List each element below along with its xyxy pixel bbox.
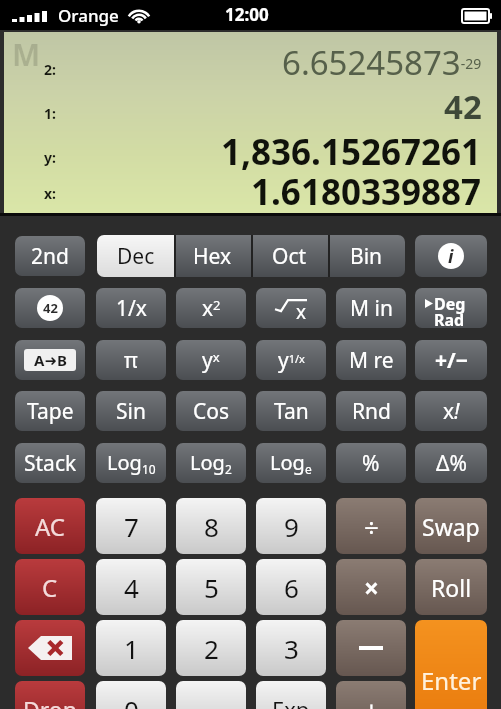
button[interactable]: Bin [328,235,405,277]
button[interactable]: Tape [15,391,85,431]
button[interactable]: pi [96,340,166,380]
staticText: × [364,570,379,605]
button[interactable]: x factorial [415,391,487,431]
button[interactable]: Hex [174,235,251,277]
staticText: 1/x [116,294,147,323]
staticText: x [296,299,307,325]
button[interactable]: 1 [96,620,166,676]
button[interactable]: Sin [96,391,166,431]
staticText: Exp [272,694,310,709]
button[interactable]: Log e [256,443,326,483]
button[interactable]: C [15,559,85,615]
button[interactable]: Roll [415,559,487,615]
staticText: M in [350,294,393,323]
staticText: + [364,692,379,709]
button[interactable]: 2 [176,620,246,676]
button[interactable]: Backspace [15,620,85,676]
staticText: Tan [274,397,309,426]
staticText: 5 [204,570,219,605]
staticText: Δ% [436,449,467,478]
button[interactable]: Multiply [336,559,406,615]
button[interactable]: 42 [15,288,85,328]
button[interactable]: 7 [96,498,166,554]
button[interactable]: Drop [15,681,85,709]
staticText: Swap [422,511,480,542]
button[interactable]: 1/x [96,288,166,328]
staticText: yx [202,346,220,375]
button[interactable]: Minus [336,620,406,676]
button[interactable]: Enter [415,620,487,709]
button[interactable]: . [176,681,246,709]
button[interactable]: Dec [97,235,174,277]
staticText: 6 [284,570,299,605]
staticText: +/− [435,346,468,375]
button[interactable]: square root [256,288,326,328]
staticText: 4 [124,570,139,605]
staticText: x2 [202,294,221,323]
staticText: ÷ [364,509,379,544]
button[interactable]: 6 [256,559,326,615]
staticText: x: [44,184,57,203]
button[interactable]: Deg Rad [415,288,487,328]
staticText: y1/x [278,346,305,375]
staticText: 1,836.15267261 [221,128,482,172]
staticText: 1 [124,631,139,666]
staticText: 42 [43,299,58,317]
staticText: 8 [204,509,219,544]
staticText: M re [349,346,394,375]
staticText: y: [44,148,56,167]
button[interactable]: A to B [15,340,85,380]
button[interactable]: Log 2 [176,443,246,483]
button[interactable]: Exp [256,681,326,709]
staticText: Dec [117,242,155,271]
button[interactable]: Swap [415,498,487,554]
button[interactable]: Tan [256,391,326,431]
button[interactable]: Info [415,235,487,277]
button[interactable]: percent [336,443,406,483]
button[interactable]: 0 [96,681,166,709]
staticText: Stack [24,449,77,478]
button[interactable]: M in [336,288,406,328]
button[interactable]: M re [336,340,406,380]
staticText: A➜B [34,350,67,370]
staticText: Oct [272,242,307,271]
staticText: Sin [116,397,146,426]
staticText: 0 [124,692,139,709]
button[interactable]: x squared [176,288,246,328]
staticText: 2nd [31,242,69,271]
button[interactable]: Rnd [336,391,406,431]
staticText: 1.6180339887 [251,168,482,212]
staticText: i [448,244,454,269]
button[interactable]: Plus [336,681,406,709]
button[interactable]: 8 [176,498,246,554]
staticText: π [124,346,138,375]
button[interactable]: 2nd [15,236,85,276]
button[interactable]: y root x [256,340,326,380]
staticText: Tape [27,397,74,426]
staticText: Roll [431,572,472,603]
button[interactable]: y to the x [176,340,246,380]
staticText: AC [35,510,66,543]
button[interactable]: Divide [336,498,406,554]
staticText: Rad [434,309,465,328]
staticText: Hex [193,242,232,271]
button[interactable]: 3 [256,620,326,676]
button[interactable]: Cos [176,391,246,431]
button[interactable]: 9 [256,498,326,554]
button[interactable]: 5 [176,559,246,615]
staticText: C [42,571,58,604]
staticText: Log10 [107,449,156,477]
button[interactable]: delta percent [415,443,487,483]
staticText: x! [443,397,460,426]
button[interactable]: Oct [251,235,328,277]
staticText: Drop [23,694,77,709]
button[interactable]: AC [15,498,85,554]
button[interactable]: 4 [96,559,166,615]
button[interactable]: plus minus [415,340,487,380]
staticText: Loge [270,449,312,477]
button[interactable]: Stack [15,443,85,483]
staticText: Enter [421,664,482,697]
staticText: 7 [124,509,139,544]
button[interactable]: Log 10 [96,443,166,483]
staticText: 2 [204,631,219,666]
